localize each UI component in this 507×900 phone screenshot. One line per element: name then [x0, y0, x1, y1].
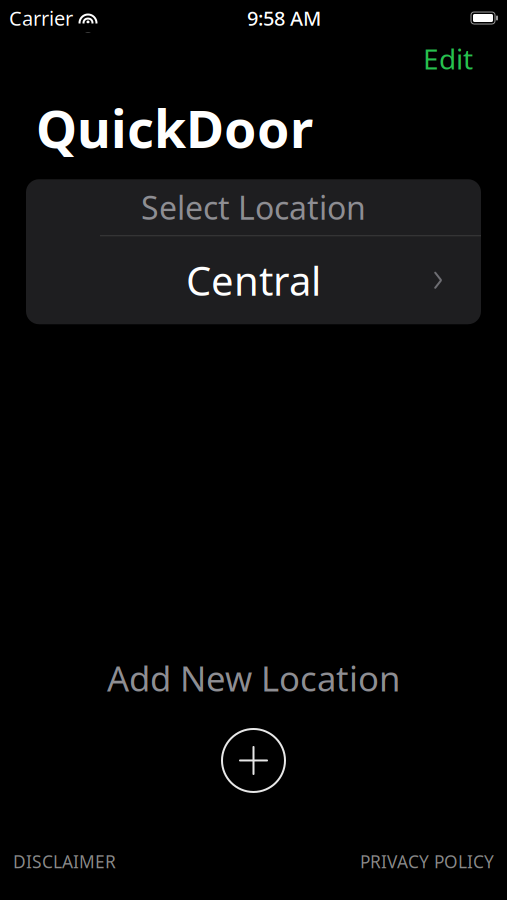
- staticText: Carrier: [9, 5, 73, 31]
- button[interactable]: Add New Location: [0, 655, 507, 792]
- staticText: Edit: [423, 40, 473, 77]
- button[interactable]: PRIVACY POLICY: [360, 844, 494, 879]
- button[interactable]: Central: [26, 236, 481, 324]
- staticText: Select Location: [141, 186, 366, 228]
- staticText: Add New Location: [107, 655, 400, 701]
- staticText: PRIVACY POLICY: [360, 850, 494, 873]
- staticText: DISCLAIMER: [13, 850, 116, 873]
- staticText: 9:58 AM: [247, 5, 321, 31]
- staticText: Central: [186, 254, 321, 307]
- button[interactable]: DISCLAIMER: [13, 844, 116, 879]
- staticText: QuickDoor: [36, 93, 313, 162]
- button[interactable]: Edit: [411, 34, 485, 83]
